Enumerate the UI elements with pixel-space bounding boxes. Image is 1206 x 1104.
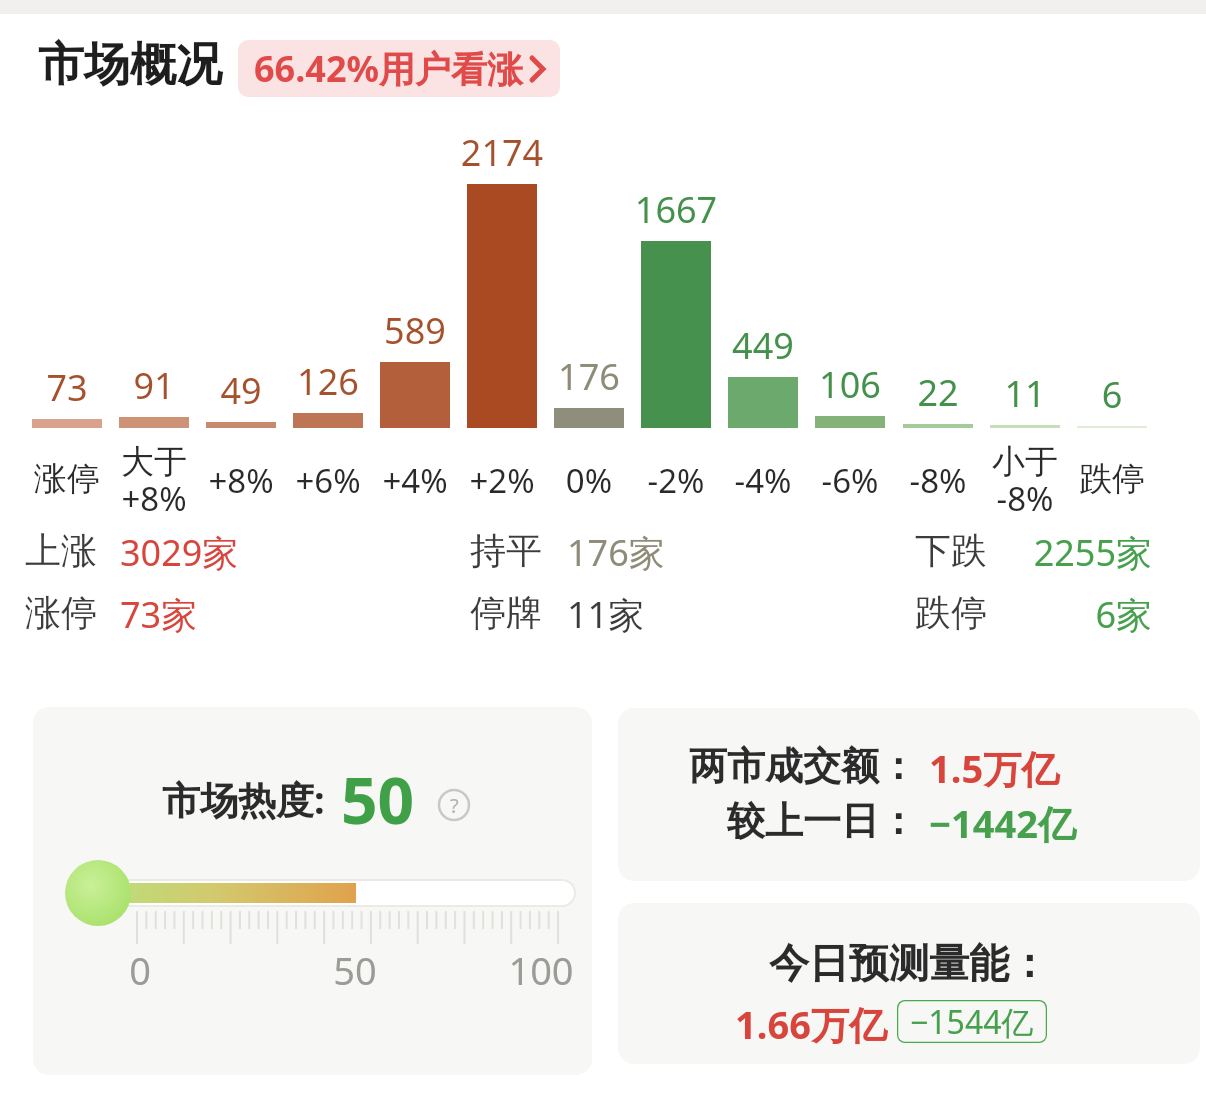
staticText: 6家 bbox=[952, 590, 1152, 639]
staticText: 3029家 bbox=[120, 528, 239, 577]
staticText: ? bbox=[450, 792, 459, 819]
staticText: 1667 bbox=[606, 185, 746, 234]
staticText: 50 bbox=[341, 756, 415, 843]
button[interactable]: ? bbox=[437, 788, 471, 822]
staticText: 小于 -8% bbox=[955, 441, 1095, 521]
staticText: 449 bbox=[693, 321, 833, 370]
staticText: +2% bbox=[432, 458, 572, 503]
staticText: 1.5万亿 bbox=[929, 742, 1060, 794]
staticText: 22 bbox=[868, 368, 1008, 417]
staticText: 较上一日： bbox=[637, 797, 917, 845]
staticText: 176家 bbox=[567, 528, 665, 577]
staticText: 589 bbox=[345, 306, 485, 355]
staticText: 两市成交额： bbox=[637, 742, 917, 790]
staticText: 106 bbox=[780, 360, 920, 409]
staticText: 50 bbox=[315, 944, 395, 996]
staticText: 市场概况 bbox=[38, 36, 222, 94]
button[interactable]: 66.42%用户看涨 bbox=[238, 40, 560, 97]
staticText: 0% bbox=[519, 458, 659, 503]
staticText: 6 bbox=[1042, 370, 1182, 419]
staticText: 2174 bbox=[432, 128, 572, 177]
staticText: -6% bbox=[780, 458, 920, 503]
staticText: 下跌 bbox=[915, 528, 987, 573]
staticText: 持平 bbox=[470, 528, 542, 573]
staticText: −1544亿 bbox=[910, 1000, 1034, 1043]
staticText: 今日预测量能： bbox=[618, 938, 1200, 988]
staticText: 涨停 bbox=[25, 590, 97, 635]
staticText: 66.42%用户看涨 bbox=[254, 44, 523, 93]
staticText: 11家 bbox=[567, 590, 645, 639]
staticText: 126 bbox=[258, 357, 398, 406]
staticText: +4% bbox=[345, 458, 485, 503]
staticText: 上涨 bbox=[25, 528, 97, 573]
staticText: 跌停 bbox=[915, 590, 987, 635]
staticText: 73家 bbox=[120, 590, 198, 639]
staticText: 市场热度: bbox=[162, 773, 325, 825]
staticText: 涨停 bbox=[0, 458, 137, 500]
button[interactable] bbox=[618, 903, 1200, 1064]
staticText: +6% bbox=[258, 458, 398, 503]
staticText: +8% bbox=[171, 458, 311, 503]
staticText: 0 bbox=[110, 944, 170, 996]
staticText: 176 bbox=[519, 352, 659, 401]
staticText: 大于 +8% bbox=[84, 441, 224, 521]
staticText: -4% bbox=[693, 458, 833, 503]
staticText: 73 bbox=[0, 363, 137, 412]
staticText: −1442亿 bbox=[929, 797, 1077, 849]
staticText: 跌停 bbox=[1042, 458, 1182, 500]
staticText: 49 bbox=[171, 366, 311, 415]
staticText: 停牌 bbox=[470, 590, 542, 635]
staticText: 2255家 bbox=[952, 528, 1152, 577]
staticText: -8% bbox=[868, 458, 1008, 503]
staticText: 1.66万亿 bbox=[735, 998, 887, 1050]
staticText: 91 bbox=[84, 361, 224, 410]
button[interactable] bbox=[33, 707, 592, 1075]
staticText: 11 bbox=[955, 369, 1095, 418]
staticText: 100 bbox=[491, 944, 591, 996]
button[interactable]: −1544亿 bbox=[897, 1000, 1047, 1043]
staticText: -2% bbox=[606, 458, 746, 503]
button[interactable] bbox=[618, 708, 1200, 881]
